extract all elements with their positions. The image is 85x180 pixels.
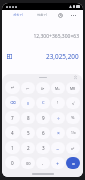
staticText: 5 xyxy=(27,130,30,136)
staticText: 00 xyxy=(26,161,31,166)
staticText: % xyxy=(71,115,75,121)
staticText: 6 xyxy=(42,130,45,136)
button[interactable]: 변환기 xyxy=(30,10,54,20)
staticText: 계산기 xyxy=(13,13,23,17)
staticText: ⌫ xyxy=(10,100,16,105)
staticText: 1/x xyxy=(71,131,76,135)
button[interactable]: 4 xyxy=(5,126,20,139)
staticText: + xyxy=(56,160,60,167)
staticText: = xyxy=(72,160,75,167)
button[interactable]: () xyxy=(21,97,35,109)
staticText: () xyxy=(27,101,30,106)
button[interactable]: C xyxy=(36,97,50,109)
staticText: MR xyxy=(70,86,76,91)
staticText: x² xyxy=(71,146,75,151)
staticText: 12,300+365,300×63 xyxy=(2,33,79,40)
button[interactable]: = xyxy=(66,157,80,169)
button[interactable]: History xyxy=(54,10,67,20)
button[interactable]: x² xyxy=(66,142,80,154)
button[interactable]: 00 xyxy=(21,157,35,169)
button[interactable]: √ xyxy=(66,97,80,109)
button[interactable]: 6 xyxy=(36,127,50,139)
staticText: ÷ xyxy=(57,115,60,122)
button[interactable]: ⌐ xyxy=(21,82,35,94)
button[interactable]: More options xyxy=(67,10,80,20)
staticText: × xyxy=(57,130,60,137)
staticText: M+ xyxy=(55,86,61,91)
staticText: − xyxy=(56,145,60,152)
staticText: C xyxy=(42,100,45,106)
staticText: ! xyxy=(57,100,59,106)
button[interactable]: × xyxy=(51,127,65,139)
button[interactable]: 7 xyxy=(5,111,20,124)
button[interactable]: 5 xyxy=(21,127,35,139)
staticText: . xyxy=(42,160,44,167)
button[interactable]: M+ xyxy=(51,82,65,94)
button[interactable]: − xyxy=(51,142,65,154)
staticText: 2 xyxy=(27,145,30,151)
staticText: 3 xyxy=(42,145,45,151)
staticText: 0 xyxy=(11,160,14,166)
staticText: 8 xyxy=(27,115,30,121)
button[interactable]: 9 xyxy=(36,112,50,124)
button[interactable]: Calculation history xyxy=(6,53,13,60)
button[interactable]: . xyxy=(36,157,50,169)
button[interactable]: ⊳ xyxy=(36,82,50,94)
staticText: 변환기 xyxy=(37,13,47,17)
button[interactable]: ↵ xyxy=(5,81,20,94)
button[interactable]: ÷ xyxy=(51,112,65,124)
button[interactable]: Scientific mode xyxy=(73,75,78,80)
staticText: 7 xyxy=(11,115,14,121)
staticText: ↵ xyxy=(11,85,15,90)
button[interactable]: 1/x xyxy=(66,127,80,139)
button[interactable]: 계산기 xyxy=(5,10,30,20)
staticText: 1 xyxy=(11,145,14,151)
staticText: 23,025,200 xyxy=(46,52,79,61)
button[interactable]: % xyxy=(66,112,80,124)
button[interactable]: 8 xyxy=(21,112,35,124)
staticText: 4 xyxy=(11,130,14,136)
staticText: ⌐ xyxy=(26,86,30,91)
staticText: ⊳ xyxy=(41,86,45,91)
staticText: 9 xyxy=(42,115,45,121)
button[interactable]: MR xyxy=(66,82,80,94)
button[interactable]: 1 xyxy=(5,141,20,154)
button[interactable]: + xyxy=(51,157,65,169)
button[interactable]: ⌫ xyxy=(5,96,20,109)
button[interactable]: 2 xyxy=(21,142,35,154)
button[interactable]: 0 xyxy=(5,156,20,169)
button[interactable]: 3 xyxy=(36,142,50,154)
staticText: √ xyxy=(72,101,75,106)
button[interactable]: ! xyxy=(51,97,65,109)
